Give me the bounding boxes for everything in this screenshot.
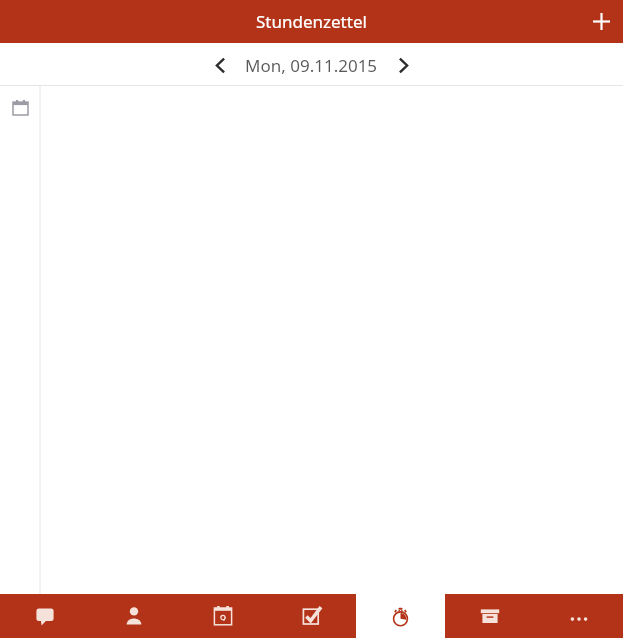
button[interactable]: More <box>534 594 623 638</box>
button[interactable]: Tasks <box>267 594 356 638</box>
staticText: Mon, 09.11.2015 <box>245 54 378 77</box>
button[interactable]: Previous day <box>203 48 237 82</box>
button[interactable]: Calendar <box>178 594 267 638</box>
button[interactable]: Archive <box>445 594 534 638</box>
staticText: Stundenzettel <box>256 10 367 33</box>
other: All day <box>13 100 28 115</box>
button[interactable]: Messages <box>0 594 89 638</box>
button[interactable]: Contacts <box>89 594 178 638</box>
button[interactable]: Add entry <box>580 0 623 43</box>
button[interactable]: Timesheet <box>356 594 445 638</box>
button[interactable]: Next day <box>386 48 420 82</box>
